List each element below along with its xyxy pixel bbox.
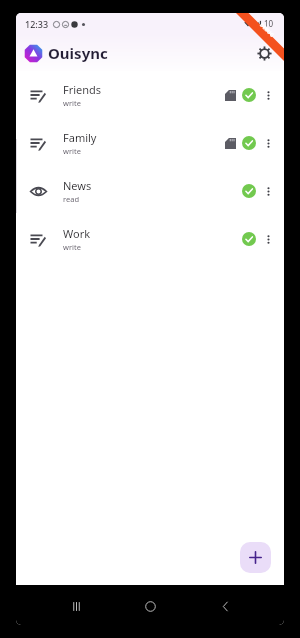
staticText: Work [63, 226, 91, 241]
staticText: write [63, 146, 81, 156]
button[interactable]: Add repository [240, 542, 271, 573]
button[interactable]: News [16, 167, 284, 215]
button[interactable]: Friends [16, 71, 284, 119]
button[interactable]: Back [210, 591, 240, 621]
staticText: News [63, 178, 92, 193]
staticText: DEBUG [258, 22, 276, 39]
staticText: 10 [264, 18, 274, 29]
button[interactable]: More options for Friends [257, 84, 279, 106]
staticText: write [63, 98, 81, 108]
button[interactable]: Recent apps [61, 591, 91, 621]
button[interactable]: More options for Work [257, 228, 279, 250]
staticText: 12:33 [25, 18, 49, 30]
staticText: Ouisync [48, 43, 108, 63]
button[interactable]: Settings [251, 40, 277, 66]
staticText: read [63, 194, 79, 204]
staticText: Family [63, 130, 97, 145]
staticText: Friends [63, 82, 102, 97]
button[interactable]: Family [16, 119, 284, 167]
button[interactable]: Work [16, 215, 284, 263]
staticText: write [63, 242, 81, 252]
button[interactable]: More options for Family [257, 132, 279, 154]
button[interactable]: Home [135, 591, 165, 621]
button[interactable]: More options for News [257, 180, 279, 202]
